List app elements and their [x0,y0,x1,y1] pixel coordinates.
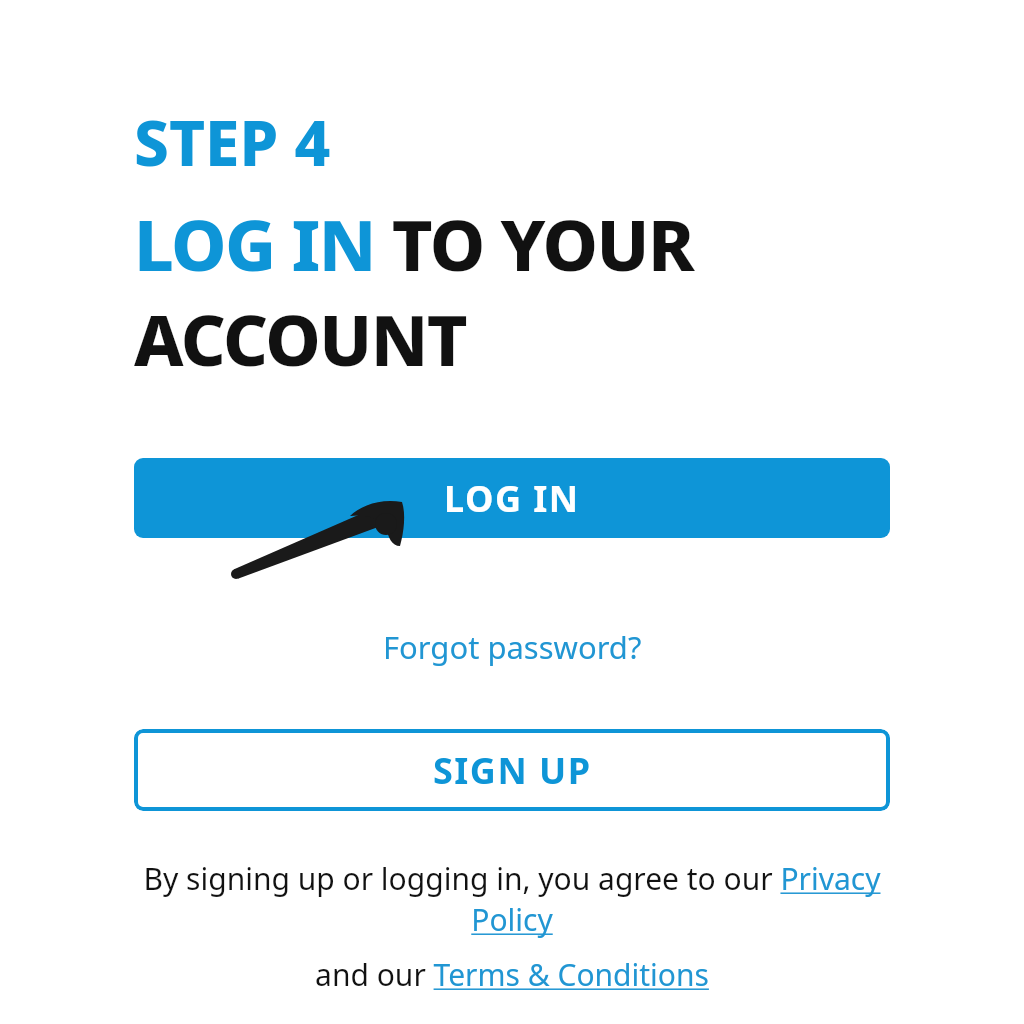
staticText: LOG IN [444,474,580,523]
button[interactable]: LOG IN [134,458,890,538]
button[interactable]: and our Terms & Conditions [315,954,709,995]
button[interactable]: Forgot password? [383,626,642,668]
staticText: LOG IN TO YOUR ACCOUNT [134,196,890,386]
staticText: STEP 4 [134,100,331,184]
staticText: Forgot password? [383,626,642,668]
button[interactable]: SIGN UP [134,729,890,811]
button[interactable]: By signing up or logging in, you agree t… [134,858,890,940]
staticText: SIGN UP [433,746,592,795]
